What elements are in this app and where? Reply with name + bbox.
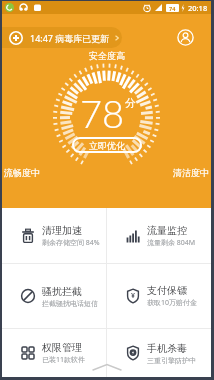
staticText: 清理加速	[42, 224, 82, 237]
staticText: 支付保镖	[147, 284, 187, 297]
staticText: 74	[169, 5, 176, 12]
button[interactable]: 手机杀毒	[107, 329, 211, 377]
staticText: 流畅度中	[4, 167, 40, 178]
button[interactable]: 清理加速	[2, 208, 106, 263]
button[interactable]: 权限管理	[2, 329, 106, 377]
staticText: 剩余存储空间 84%	[42, 238, 100, 248]
button[interactable]: ¥	[107, 264, 211, 328]
staticText: 78	[80, 90, 125, 136]
staticText: 流量剩余 804M	[147, 238, 196, 248]
staticText: 立即优化	[89, 140, 125, 151]
staticText: 分	[125, 96, 136, 110]
staticText: 三重引擎防护中	[147, 356, 196, 365]
staticText: 安全度高	[89, 50, 125, 61]
staticText: 拦截骚扰电话短信	[42, 299, 98, 308]
button[interactable]: 14:47 病毒库已更新	[2, 27, 122, 48]
staticText: 20:18	[188, 3, 208, 13]
staticText: 骚扰拦截	[42, 285, 82, 298]
button[interactable]: 骚扰拦截	[2, 264, 106, 328]
staticText: 流量监控	[147, 224, 187, 237]
staticText: 清洁度中	[173, 167, 209, 178]
staticText: ¥	[131, 291, 136, 301]
staticText: 获取10万赔付金	[147, 298, 198, 308]
staticText: 权限管理	[42, 341, 82, 354]
staticText: 14:47 病毒库已更新	[30, 32, 110, 44]
staticText: 手机杀毒	[147, 342, 187, 355]
button[interactable]: 立即优化	[72, 137, 142, 153]
staticText: 已装11款软件	[42, 355, 86, 365]
button[interactable]	[177, 27, 211, 48]
button[interactable]: 流量监控	[107, 208, 211, 263]
